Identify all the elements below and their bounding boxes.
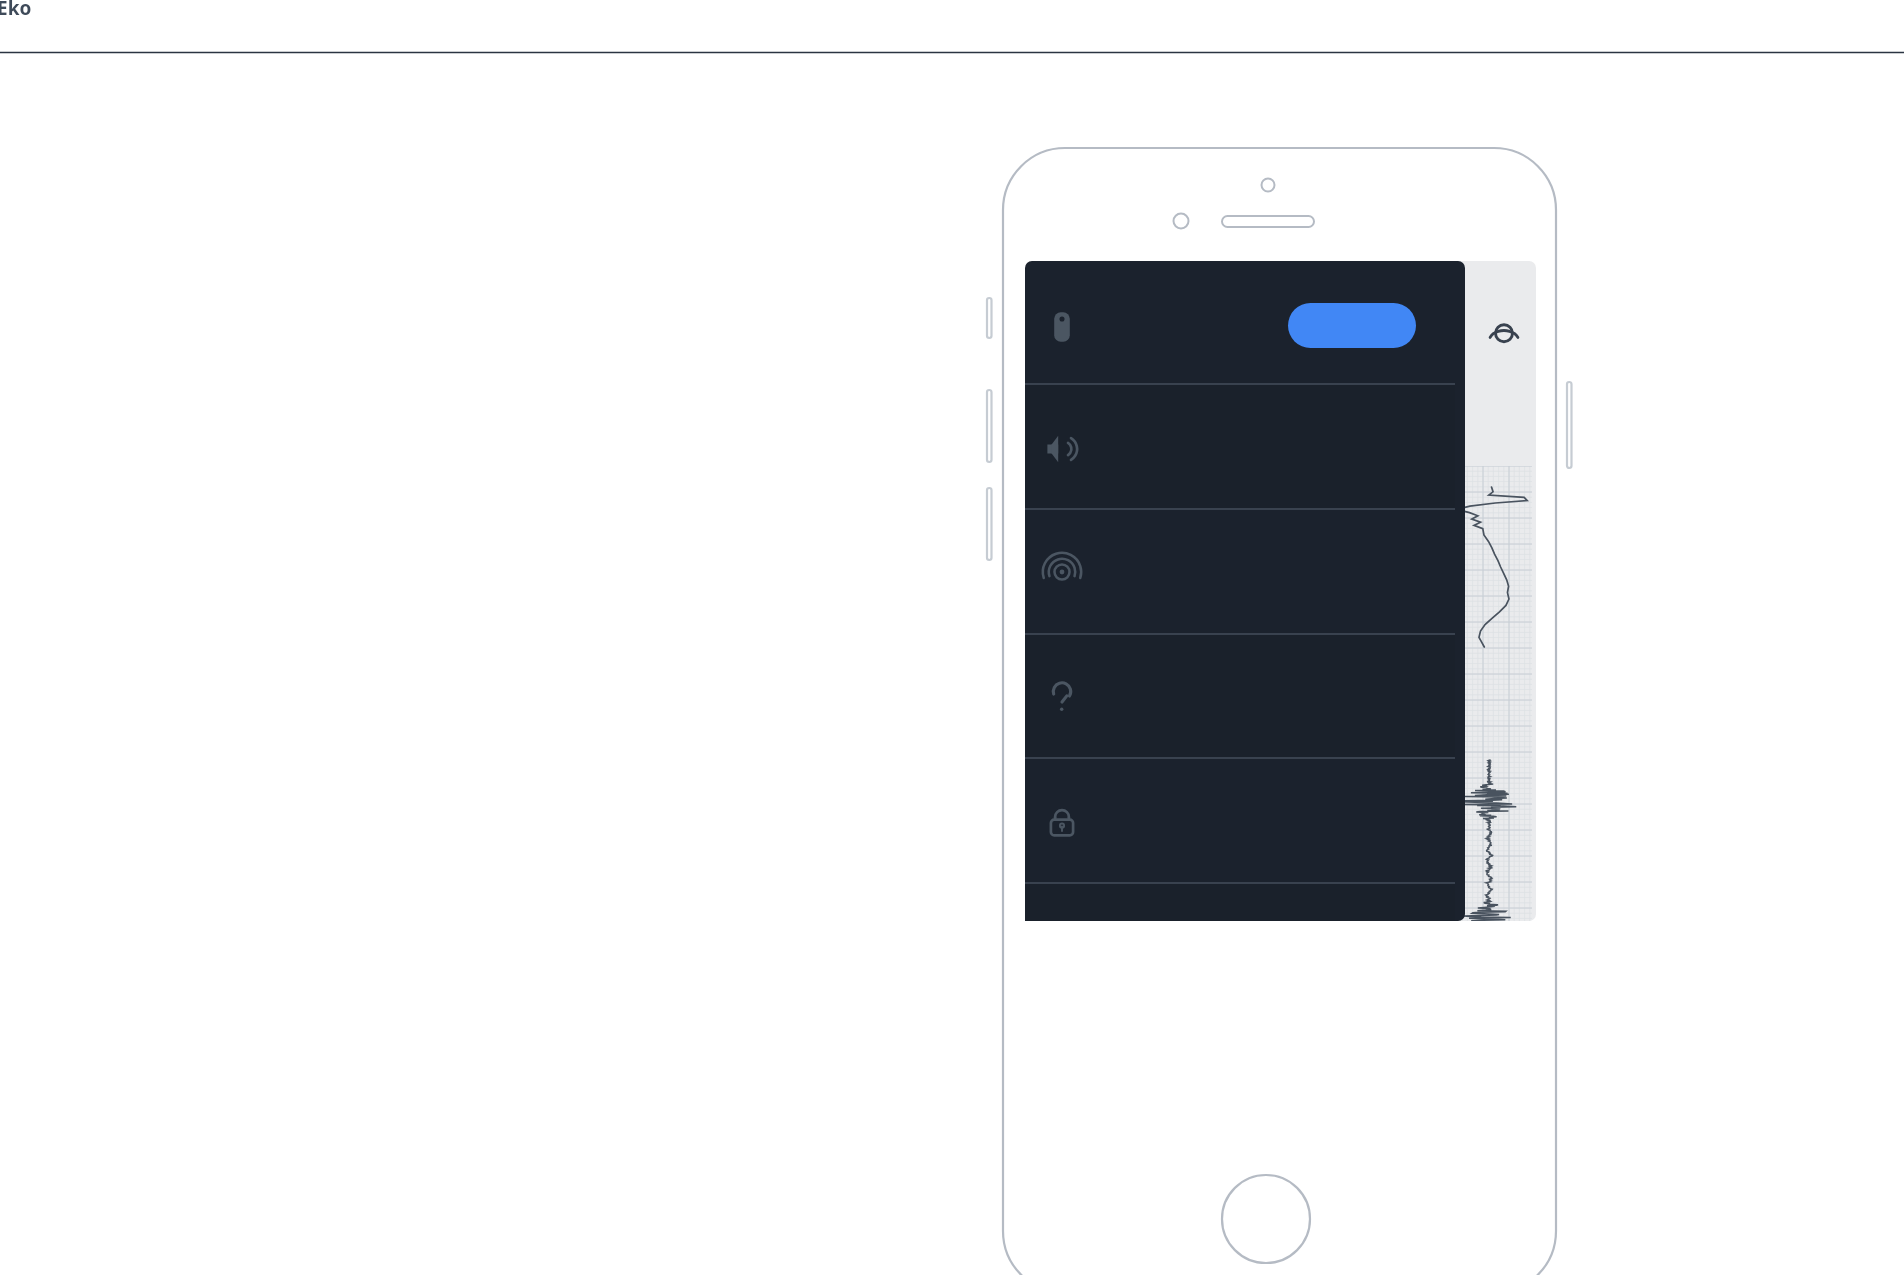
button[interactable]: Device: [1025, 261, 1175, 384]
button[interactable]: Home: [1222, 1175, 1310, 1263]
button[interactable]: Start recording: [1288, 303, 1416, 348]
button[interactable]: Live stream: [1025, 509, 1455, 633]
button[interactable]: Volume: [1025, 384, 1455, 508]
button[interactable]: Privacy: [1025, 758, 1455, 882]
button[interactable]: Account: [1481, 314, 1529, 366]
button[interactable]: Help: [1025, 634, 1455, 758]
